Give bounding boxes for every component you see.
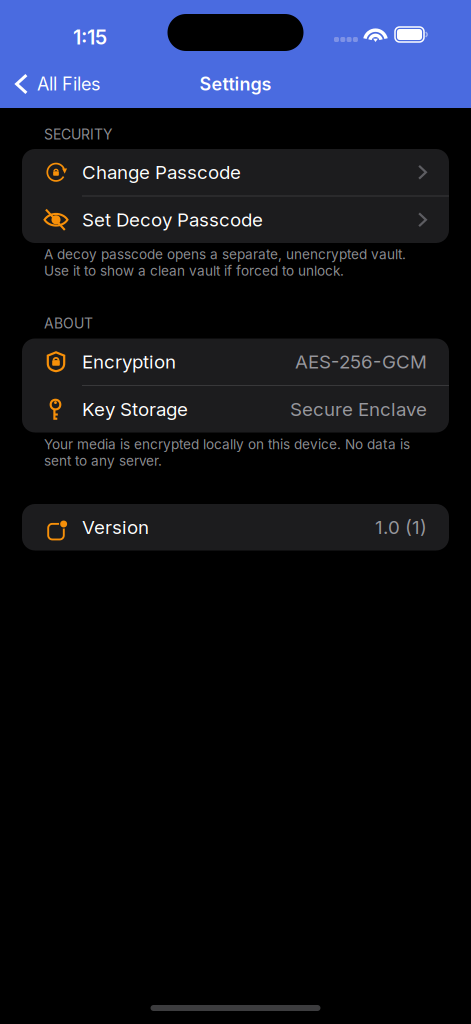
button[interactable]: Set Decoy Passcode [22,196,449,243]
staticText: Change Passcode [82,161,241,184]
staticText: Your media is encrypted locally on this … [44,436,410,469]
staticText: SECURITY [44,126,113,143]
staticText: Settings [199,73,271,95]
staticText: ABOUT [44,315,93,332]
staticText: 1:15 [73,25,107,49]
staticText: All Files [37,73,101,95]
staticText: A decoy passcode opens a separate, unenc… [44,246,406,279]
staticText: Set Decoy Passcode [82,208,263,231]
staticText: Version [82,516,149,539]
staticText: 1.0 (1) [375,516,427,539]
staticText: AES-256-GCM [295,350,427,373]
button[interactable]: Change Passcode [22,149,449,195]
staticText: Key Storage [82,398,188,421]
staticText: Encryption [82,350,176,373]
button[interactable]: All Files [0,60,113,108]
staticText: Secure Enclave [290,398,427,421]
